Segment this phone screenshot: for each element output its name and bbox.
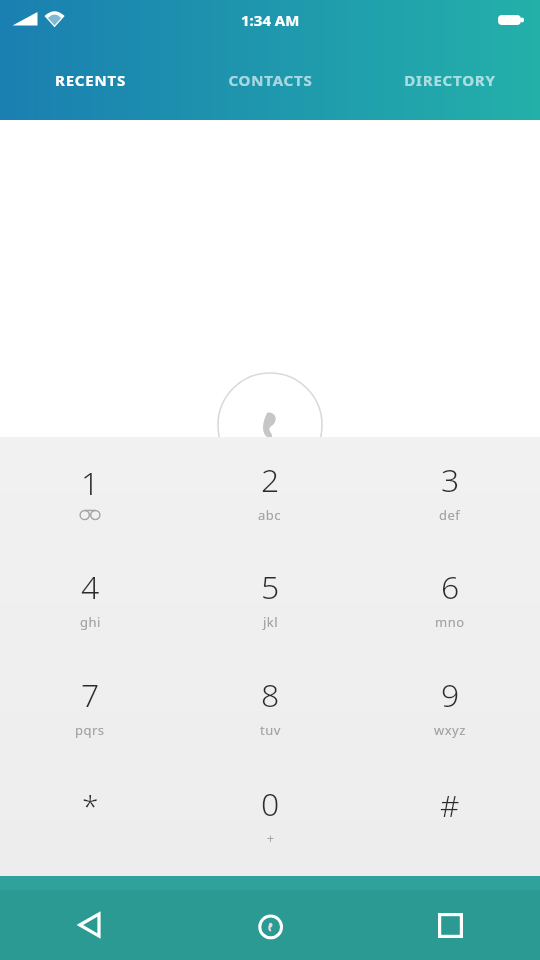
staticText: ghi bbox=[80, 613, 101, 631]
staticText: 8 bbox=[261, 673, 280, 717]
button[interactable]: * bbox=[0, 760, 180, 868]
staticText: * bbox=[82, 785, 99, 826]
staticText: # bbox=[440, 785, 460, 826]
staticText: 0 bbox=[261, 782, 280, 826]
staticText: 4 bbox=[81, 565, 100, 609]
button[interactable]: 3 bbox=[360, 437, 540, 544]
button[interactable]: CONTACTS bbox=[180, 40, 360, 120]
button[interactable]: 0 bbox=[180, 760, 360, 868]
staticText: mno bbox=[435, 613, 465, 631]
button[interactable]: RECENTS bbox=[0, 40, 180, 120]
staticText: jkl bbox=[263, 613, 279, 631]
staticText: 1:34 AM bbox=[241, 10, 300, 30]
staticText: def bbox=[439, 506, 461, 524]
button[interactable]: 2 bbox=[180, 437, 360, 544]
staticText: pqrs bbox=[75, 721, 105, 739]
button[interactable]: 6 bbox=[360, 544, 540, 652]
button[interactable]: Recent apps bbox=[360, 890, 540, 960]
staticText: + bbox=[267, 830, 275, 846]
staticText: CONTACTS bbox=[228, 70, 313, 90]
staticText: 5 bbox=[261, 565, 280, 609]
button[interactable]: 9 bbox=[360, 652, 540, 760]
staticText: wxyz bbox=[434, 721, 466, 739]
button[interactable]: 8 bbox=[180, 652, 360, 760]
staticText: 2 bbox=[261, 458, 280, 502]
staticText: 1 bbox=[81, 461, 100, 505]
button[interactable]: Home bbox=[180, 890, 360, 960]
button[interactable]: Dial bbox=[217, 372, 323, 478]
staticText: 3 bbox=[441, 458, 460, 502]
staticText: 9 bbox=[441, 673, 460, 717]
button[interactable]: # bbox=[360, 760, 540, 868]
button[interactable]: 5 bbox=[180, 544, 360, 652]
button[interactable]: 4 bbox=[0, 544, 180, 652]
staticText: 7 bbox=[81, 673, 100, 717]
button[interactable]: 1 bbox=[0, 437, 180, 544]
staticText: tuv bbox=[260, 721, 281, 739]
staticText: abc bbox=[258, 506, 282, 524]
staticText: DIRECTORY bbox=[404, 70, 496, 90]
staticText: 6 bbox=[441, 565, 460, 609]
staticText: RECENTS bbox=[55, 70, 126, 90]
button[interactable]: DIRECTORY bbox=[360, 40, 540, 120]
button[interactable]: Back bbox=[0, 890, 180, 960]
button[interactable]: 7 bbox=[0, 652, 180, 760]
